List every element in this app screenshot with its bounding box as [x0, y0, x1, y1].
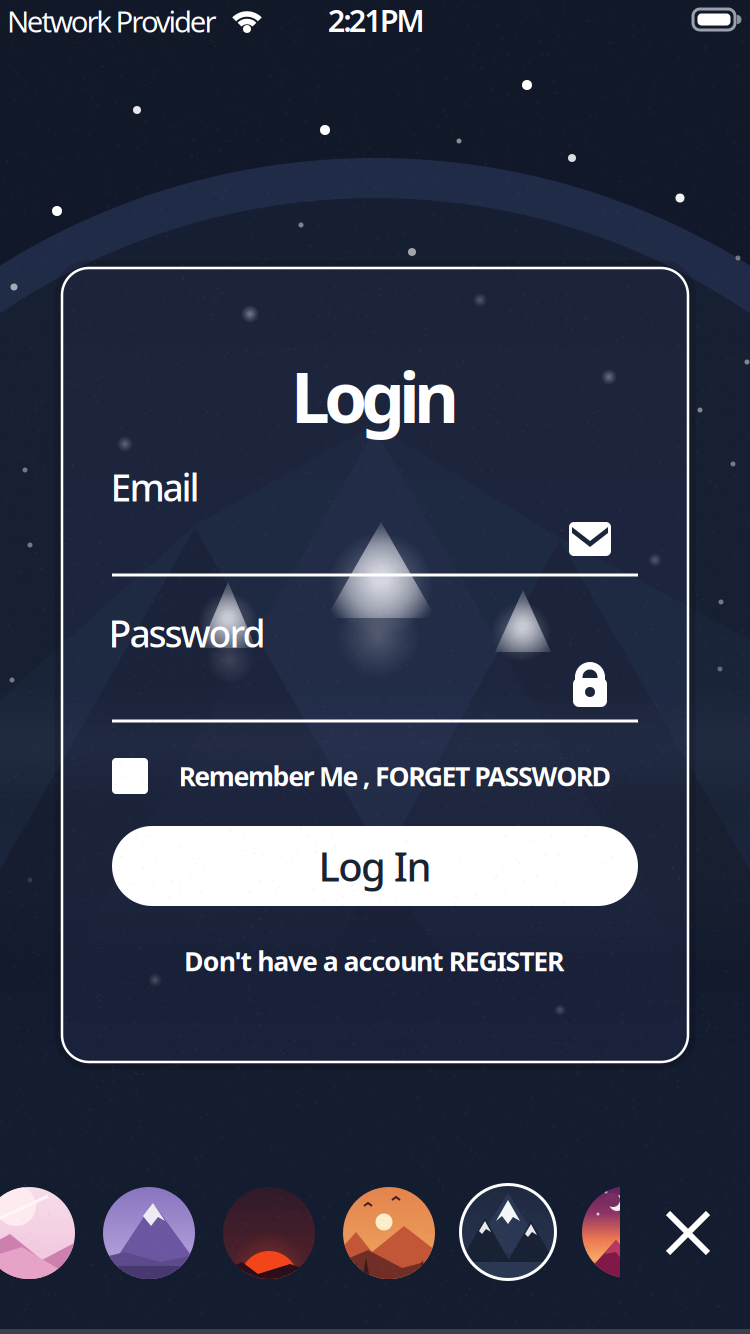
button[interactable]: Theme 3 [223, 1187, 315, 1279]
button[interactable]: Don't have a account REGISTER [184, 943, 564, 979]
button[interactable]: Theme 6 [583, 1187, 675, 1279]
staticText: Email [110, 462, 199, 512]
button[interactable]: Remember Me [0, 0, 750, 1334]
button[interactable]: Theme 5 [463, 1187, 555, 1279]
button[interactable]: Theme 1 [0, 1187, 75, 1279]
button[interactable]: Theme 2 [103, 1187, 195, 1279]
button[interactable]: Password [0, 0, 750, 1334]
staticText: Network Provider [7, 1, 216, 40]
staticText: Login [291, 350, 459, 442]
button[interactable]: Log In [112, 826, 638, 906]
staticText: 2:21PM [328, 0, 424, 40]
staticText: Log In [318, 839, 431, 892]
button[interactable]: Theme 4 [343, 1187, 435, 1279]
button[interactable]: Close [0, 0, 750, 1334]
staticText: Remember Me , FORGET PASSWORD [179, 758, 611, 794]
button[interactable]: Remember Me , FORGET PASSWORD [179, 758, 611, 794]
staticText: Don't have a account REGISTER [184, 943, 564, 979]
button[interactable]: Email [0, 0, 750, 1334]
staticText: Password [108, 608, 265, 658]
